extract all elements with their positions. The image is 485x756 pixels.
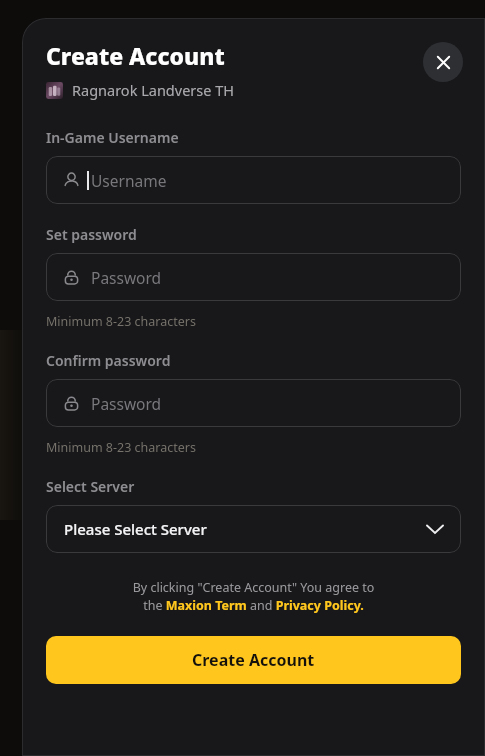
staticText: Username — [91, 170, 167, 191]
staticText: Set password — [46, 225, 137, 244]
button[interactable]: Please Select Server — [46, 505, 461, 553]
staticText: Minimum 8-23 characters — [46, 439, 196, 456]
button[interactable]: Username — [46, 156, 461, 204]
button[interactable]: Password — [46, 379, 461, 427]
staticText: Create Account — [192, 649, 315, 671]
button[interactable]: Create Account — [46, 636, 461, 684]
button[interactable]: Password — [46, 253, 461, 301]
button[interactable]: Close — [423, 42, 463, 82]
staticText: Password — [91, 267, 162, 288]
staticText: Minimum 8-23 characters — [46, 313, 196, 330]
staticText: Confirm password — [46, 351, 171, 370]
staticText: Ragnarok Landverse TH — [72, 80, 234, 100]
staticText: Select Server — [46, 477, 135, 496]
staticText: Create Account — [46, 40, 225, 71]
staticText: In-Game Username — [46, 128, 179, 147]
staticText: Please Select Server — [64, 519, 427, 539]
button[interactable]: By clicking "Create Account" You agree t… — [56, 579, 451, 614]
staticText: Password — [91, 393, 162, 414]
